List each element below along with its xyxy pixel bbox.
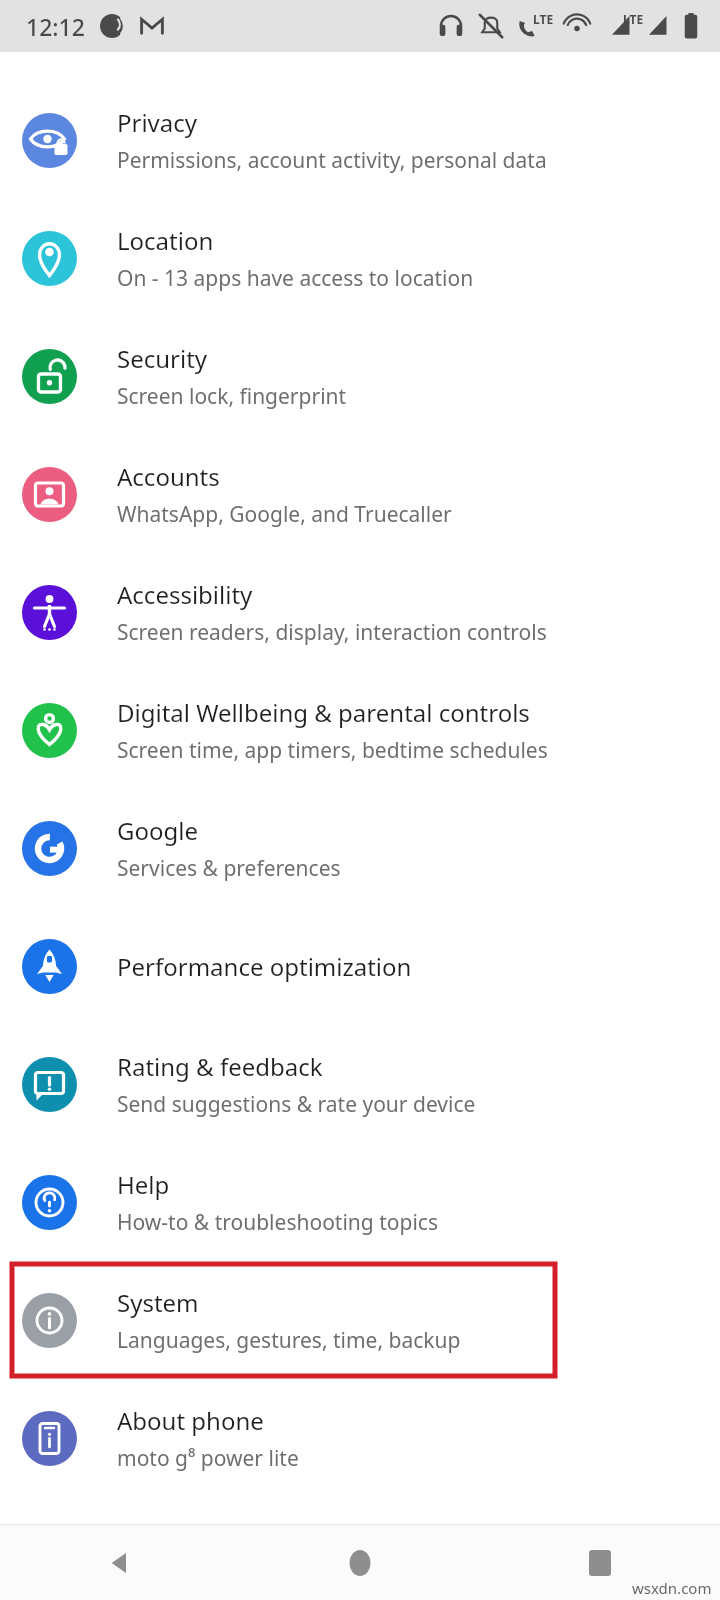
button[interactable]: Privacy	[0, 81, 720, 199]
staticText: How-to & troubleshooting topics	[117, 1208, 438, 1237]
staticText: Accounts	[117, 460, 220, 493]
staticText: LTE	[623, 11, 644, 27]
staticText: Rating & feedback	[117, 1050, 323, 1083]
staticText: Screen readers, display, interaction con…	[117, 618, 547, 647]
staticText: On - 13 apps have access to location	[117, 264, 474, 293]
staticText: Help	[117, 1168, 170, 1201]
staticText: Location	[117, 224, 214, 257]
staticText: About phone	[117, 1404, 264, 1437]
staticText: Google	[117, 814, 198, 847]
staticText: Digital Wellbeing & parental controls	[117, 696, 530, 729]
staticText: Screen lock, fingerprint	[117, 382, 347, 411]
staticText: 12:12	[26, 11, 85, 42]
staticText: wsxdn.com	[632, 1578, 712, 1598]
button[interactable]: About phone	[0, 1379, 720, 1497]
button[interactable]: Security	[0, 317, 720, 435]
button[interactable]: Back	[0, 1525, 240, 1600]
button[interactable]: Google	[0, 789, 720, 907]
staticText: Security	[117, 342, 208, 375]
button[interactable]: Help	[0, 1143, 720, 1261]
staticText: LTE	[533, 11, 554, 27]
staticText: Permissions, account activity, personal …	[117, 146, 547, 175]
staticText: System	[117, 1286, 199, 1319]
button[interactable]: Accessibility	[0, 553, 720, 671]
staticText: moto g⁸ power lite	[117, 1444, 299, 1473]
staticText: WhatsApp, Google, and Truecaller	[117, 500, 452, 529]
staticText: Languages, gestures, time, backup	[117, 1326, 461, 1355]
button[interactable]: Performance optimization	[0, 907, 720, 1025]
button[interactable]: Home	[240, 1525, 480, 1600]
button[interactable]: Rating & feedback	[0, 1025, 720, 1143]
button[interactable]: Location	[0, 199, 720, 317]
button[interactable]: Recent apps	[480, 1525, 720, 1600]
button[interactable]: Digital Wellbeing & parental controls	[0, 671, 720, 789]
staticText: Privacy	[117, 106, 198, 139]
staticText: Send suggestions & rate your device	[117, 1090, 476, 1119]
staticText: Accessibility	[117, 578, 253, 611]
button[interactable]: System	[0, 1261, 720, 1379]
staticText: Performance optimization	[117, 950, 412, 983]
staticText: Screen time, app timers, bedtime schedul…	[117, 736, 548, 765]
button[interactable]: Accounts	[0, 435, 720, 553]
staticText: Services & preferences	[117, 854, 341, 883]
